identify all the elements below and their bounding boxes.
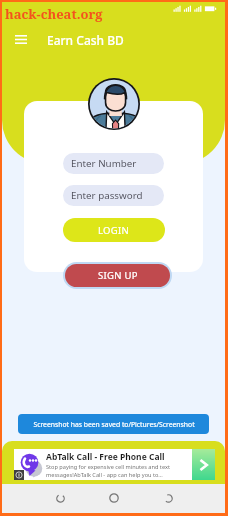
button[interactable]: Install <box>192 449 215 480</box>
staticText: Enter Number <box>71 157 137 170</box>
staticText: Enter password <box>71 189 143 202</box>
staticText: SIGN UP <box>98 269 138 282</box>
staticText: AbTalk Call - Free Phone Call <box>46 451 165 463</box>
staticText: Stop paying for expensive cell minutes a… <box>46 463 170 471</box>
staticText: LOGIN <box>98 224 130 237</box>
staticText: hack-cheat.org <box>5 5 103 23</box>
button[interactable]: Enter Number <box>71 153 164 174</box>
button[interactable]: SIGN UP <box>65 264 170 287</box>
button[interactable]: Enter password <box>71 185 164 206</box>
staticText: Earn Cash BD <box>47 32 124 48</box>
button[interactable]: Back <box>46 486 74 510</box>
button[interactable]: Screenshot has been saved to/Pictures/Sc… <box>18 414 209 434</box>
staticText: messages!AbTalk Call - app can help you … <box>46 471 163 479</box>
button[interactable]: LOGIN <box>63 218 165 242</box>
button[interactable]: Home <box>100 486 128 510</box>
button[interactable]: AbTalk Call - Free Phone Call <box>14 449 215 480</box>
button[interactable]: Open navigation menu <box>8 28 34 51</box>
staticText: Screenshot has been saved to/Pictures/Sc… <box>33 420 195 429</box>
button[interactable]: Recents <box>154 486 182 510</box>
